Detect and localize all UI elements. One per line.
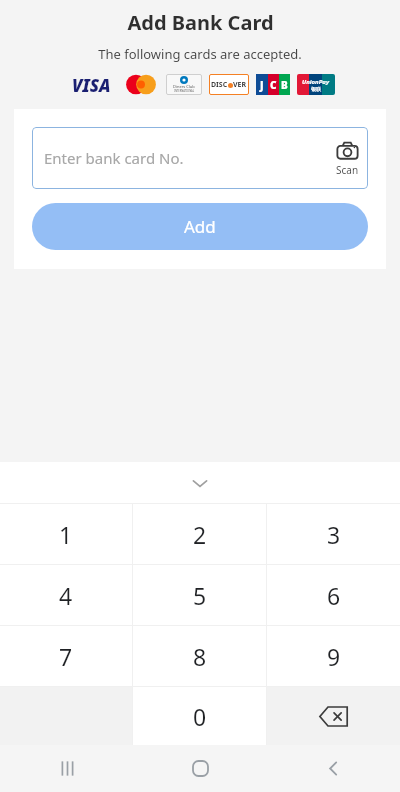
staticText: VISA bbox=[72, 74, 111, 95]
staticText: Enter bank card No. bbox=[44, 148, 184, 168]
staticText: UnionPay bbox=[302, 78, 330, 86]
button[interactable]: Recents bbox=[0, 745, 134, 792]
staticText: 1 bbox=[59, 519, 73, 550]
button[interactable]: Add bbox=[32, 203, 368, 250]
button[interactable]: Enter bank card No. bbox=[32, 127, 368, 189]
button[interactable]: 7 bbox=[0, 626, 132, 686]
staticText: C bbox=[270, 78, 277, 92]
staticText: J bbox=[260, 78, 264, 92]
staticText: 银联 bbox=[311, 86, 321, 92]
staticText: Add Bank Card bbox=[127, 9, 274, 36]
staticText: 5 bbox=[193, 580, 207, 611]
staticText: DISC bbox=[211, 80, 228, 90]
staticText: 8 bbox=[193, 641, 207, 672]
button[interactable]: 4 bbox=[0, 565, 132, 625]
staticText: Scan bbox=[336, 163, 359, 177]
button[interactable]: Home bbox=[134, 745, 267, 792]
staticText: 4 bbox=[59, 580, 73, 611]
button[interactable]: 0 bbox=[133, 687, 266, 745]
staticText: 6 bbox=[327, 580, 341, 611]
staticText: VER bbox=[233, 80, 247, 90]
staticText: 2 bbox=[193, 519, 207, 550]
staticText: Add bbox=[184, 215, 216, 238]
staticText: B bbox=[281, 78, 288, 92]
staticText: INTERNATIONAL bbox=[174, 89, 195, 93]
staticText: 7 bbox=[59, 641, 73, 672]
button[interactable]: 3 bbox=[267, 504, 400, 564]
staticText: 0 bbox=[193, 701, 207, 732]
staticText: 3 bbox=[327, 519, 341, 550]
button[interactable]: 1 bbox=[0, 504, 132, 564]
button[interactable]: 5 bbox=[133, 565, 266, 625]
staticText: The following cards are accepted. bbox=[98, 45, 302, 63]
button[interactable]: 2 bbox=[133, 504, 266, 564]
button[interactable]: Scan card bbox=[336, 139, 359, 177]
button[interactable]: 8 bbox=[133, 626, 266, 686]
button[interactable]: Back bbox=[267, 745, 400, 792]
button[interactable]: Backspace bbox=[267, 687, 400, 745]
staticText: Diners Club bbox=[173, 84, 195, 89]
staticText: 9 bbox=[327, 641, 341, 672]
button[interactable]: Hide keyboard bbox=[0, 462, 400, 503]
button[interactable]: 9 bbox=[267, 626, 400, 686]
button[interactable]: 6 bbox=[267, 565, 400, 625]
